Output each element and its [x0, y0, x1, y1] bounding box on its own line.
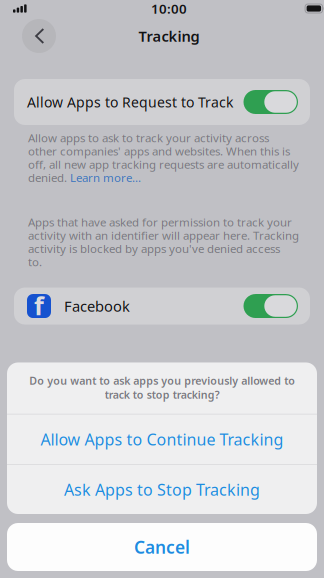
staticText: 10:00: [151, 0, 187, 17]
staticText: Allow Apps to Continue Tracking: [40, 429, 283, 450]
staticText: Allow apps to ask to track your activity…: [28, 130, 299, 185]
button[interactable]: Allow Apps to Request to Track: [14, 79, 310, 125]
button[interactable]: Back: [19, 17, 59, 55]
staticText: Ask Apps to Stop Tracking: [64, 479, 260, 500]
staticText: f: [34, 289, 44, 322]
button[interactable]: f: [14, 287, 310, 324]
staticText: Facebook: [64, 296, 130, 316]
staticText: Cancel: [134, 535, 190, 558]
button[interactable]: Ask Apps to Stop Tracking: [7, 465, 317, 514]
button[interactable]: Cancel: [7, 523, 317, 571]
staticText: Do you want to ask apps you previously a…: [29, 373, 295, 402]
staticText: Apps that have asked for permission to t…: [28, 214, 299, 270]
staticText: Tracking: [138, 26, 199, 46]
button[interactable]: Allow Apps to Continue Tracking: [7, 414, 317, 464]
staticText: Allow Apps to Request to Track: [27, 92, 233, 112]
